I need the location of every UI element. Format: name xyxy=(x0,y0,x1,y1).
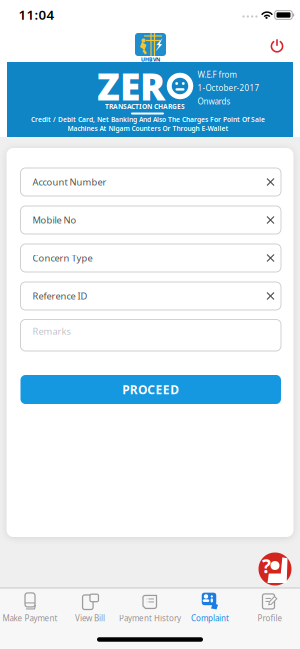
button[interactable]: Payment History xyxy=(118,588,182,628)
staticText: Make Payment xyxy=(2,613,57,623)
staticText: Payment History xyxy=(119,613,181,623)
staticText: TRANSACTION CHARGES xyxy=(105,102,185,111)
button[interactable]: Complaint xyxy=(178,588,242,628)
button[interactable]: PROCEED xyxy=(20,375,281,404)
staticText: 1-October-2017 xyxy=(197,83,259,93)
staticText: 11:04 xyxy=(18,6,54,23)
button[interactable]: Clear Mobile No xyxy=(263,213,277,227)
staticText: Profile xyxy=(257,613,282,623)
staticText: ZER xyxy=(97,61,165,111)
button[interactable]: Clear Account Number xyxy=(263,175,277,189)
button[interactable]: Clear Concern Type xyxy=(263,251,277,265)
staticText: ? xyxy=(262,554,271,578)
staticText: Machines At Nigam Counters Or Through E-… xyxy=(67,124,228,133)
staticText: W.E.F from xyxy=(197,69,236,80)
button[interactable]: Help xyxy=(258,552,291,585)
staticText: Account Number xyxy=(32,176,106,188)
staticText: Mobile No xyxy=(32,214,76,226)
staticText: Concern Type xyxy=(32,252,92,264)
button[interactable]: Clear Reference ID xyxy=(263,289,277,303)
button[interactable]: Make Payment xyxy=(0,588,62,628)
staticText: PROCEED xyxy=(122,381,179,397)
staticText: Onwards xyxy=(197,96,230,107)
button[interactable]: View Bill xyxy=(58,588,122,628)
staticText: Credit / Debit Card, Net Banking And Als… xyxy=(31,115,265,124)
staticText: Reference ID xyxy=(32,290,87,302)
button[interactable]: Profile xyxy=(238,588,300,628)
button[interactable]: Logout xyxy=(267,36,286,55)
staticText: UHBVN xyxy=(141,56,160,63)
staticText: Complaint xyxy=(191,613,229,623)
staticText: View Bill xyxy=(75,613,105,623)
staticText: Remarks xyxy=(32,325,70,337)
